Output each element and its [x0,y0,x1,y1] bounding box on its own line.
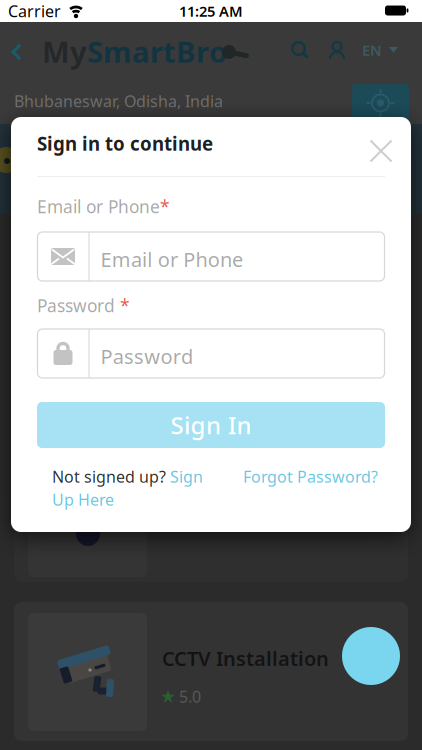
staticText: SmartBro [87,32,227,71]
staticText: EN [362,40,382,60]
staticText: Email or Phone [37,195,160,218]
staticText: * [120,294,130,317]
button[interactable]: Account [328,41,346,59]
staticText: Sign In [170,409,251,441]
button[interactable]: Back [11,44,23,60]
staticText: Sign in to continue [37,131,213,156]
staticText: 5.0 [179,686,201,707]
staticText: Carrier [8,0,61,22]
staticText: 11:25 AM [179,1,243,21]
button[interactable]: Sign [170,466,203,487]
button[interactable]: Close [370,140,391,161]
staticText: CCTV Installation [162,645,329,672]
button[interactable]: Sign In [37,402,385,448]
button[interactable]: Chat [342,627,400,685]
staticText: Bhubaneswar, Odisha, India [14,90,223,112]
button[interactable]: CCTV Installation [0,602,422,741]
button[interactable]: Up Here [52,489,114,510]
staticText: My [42,32,87,71]
staticText: Email or Phone [100,246,243,273]
staticText: Forgot Password? [243,466,378,487]
button[interactable]: Locate me [352,84,409,122]
staticText: Not signed up? [52,466,170,487]
button[interactable]: Search [291,41,309,59]
staticText: * [160,195,170,218]
button[interactable]: Forgot Password? [243,466,378,487]
button[interactable]: Language [362,40,398,60]
staticText: Password [100,343,193,370]
staticText: Sign [170,466,203,487]
staticText: Up Here [52,489,114,510]
staticText: Password [37,294,120,317]
